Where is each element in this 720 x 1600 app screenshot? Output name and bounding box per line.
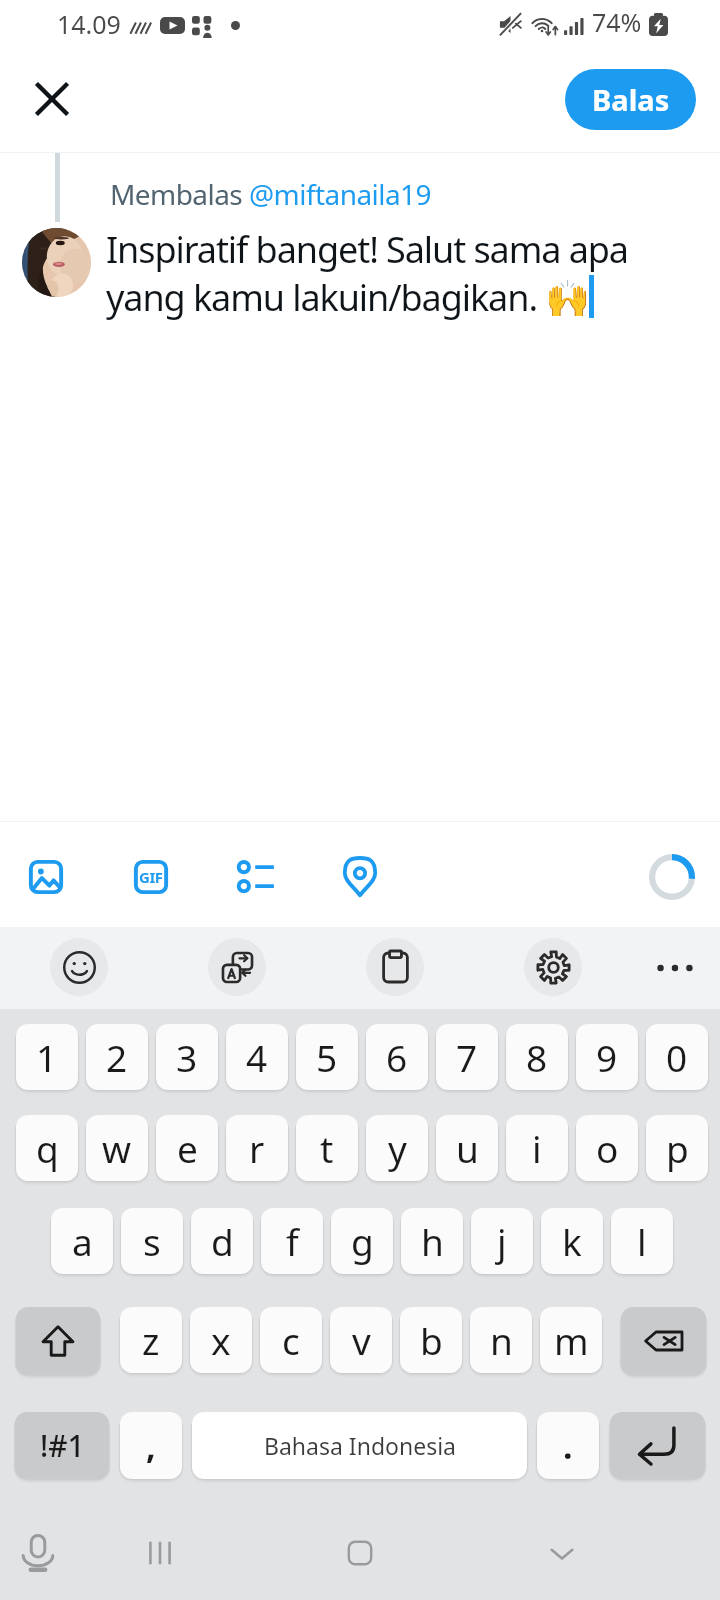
button[interactable]: y xyxy=(366,1115,428,1181)
staticText: @miftanaila19 xyxy=(249,175,431,213)
staticText: g xyxy=(351,1216,374,1266)
button[interactable]: z xyxy=(120,1307,182,1373)
button[interactable]: !#1 xyxy=(15,1412,109,1479)
staticText: !#1 xyxy=(40,1425,85,1466)
button[interactable]: Recents xyxy=(134,1527,186,1579)
staticText: x xyxy=(211,1315,231,1365)
staticText: 0 xyxy=(666,1032,688,1082)
staticText: m xyxy=(554,1315,589,1365)
button[interactable]: p xyxy=(646,1115,708,1181)
staticText: b xyxy=(420,1315,443,1365)
staticText: i xyxy=(532,1123,542,1173)
button[interactable]: d xyxy=(191,1208,253,1274)
button[interactable]: 5 xyxy=(296,1024,358,1090)
staticText: GIF xyxy=(139,867,163,887)
staticText: z xyxy=(142,1315,160,1365)
button[interactable]: Voice input xyxy=(12,1527,64,1579)
button[interactable]: m xyxy=(540,1307,602,1373)
staticText: 8 xyxy=(526,1032,548,1082)
staticText: c xyxy=(282,1315,300,1365)
button[interactable]: Backspace xyxy=(621,1307,706,1375)
button[interactable]: g xyxy=(331,1208,393,1274)
staticText: s xyxy=(143,1216,161,1266)
button[interactable]: More options xyxy=(650,943,700,993)
button[interactable]: c xyxy=(260,1307,322,1373)
button[interactable]: 0 xyxy=(646,1024,708,1090)
staticText: d xyxy=(211,1216,234,1266)
button[interactable]: 2 xyxy=(86,1024,148,1090)
staticText: 7 xyxy=(456,1032,478,1082)
button[interactable]: 8 xyxy=(506,1024,568,1090)
button[interactable]: Character count xyxy=(645,850,699,904)
button[interactable]: r xyxy=(226,1115,288,1181)
button[interactable]: Add poll xyxy=(230,851,282,903)
button[interactable]: f xyxy=(261,1208,323,1274)
staticText: a xyxy=(72,1216,93,1266)
button[interactable]: 1 xyxy=(16,1024,78,1090)
staticText: h xyxy=(421,1216,444,1266)
staticText: 2 xyxy=(106,1032,128,1082)
button[interactable]: 6 xyxy=(366,1024,428,1090)
button[interactable]: . xyxy=(537,1412,599,1479)
button[interactable]: Emoji xyxy=(50,938,108,996)
staticText: f xyxy=(286,1216,299,1266)
staticText: y xyxy=(388,1123,407,1173)
staticText: 3 xyxy=(176,1032,198,1082)
staticText: Balas xyxy=(592,80,670,119)
button[interactable]: w xyxy=(86,1115,148,1181)
button[interactable]: Add GIF xyxy=(125,851,177,903)
button[interactable]: k xyxy=(541,1208,603,1274)
button[interactable]: , xyxy=(120,1412,182,1479)
button[interactable]: Balas xyxy=(565,69,696,130)
button[interactable]: o xyxy=(576,1115,638,1181)
button[interactable]: Keyboard settings xyxy=(524,938,582,996)
button[interactable]: Add location xyxy=(334,851,386,903)
button[interactable]: Add photo xyxy=(20,851,72,903)
button[interactable]: Hide keyboard xyxy=(536,1527,588,1579)
button[interactable]: l xyxy=(611,1208,673,1274)
staticText: , xyxy=(146,1423,156,1469)
button[interactable]: i xyxy=(506,1115,568,1181)
button[interactable]: a xyxy=(51,1208,113,1274)
button[interactable]: e xyxy=(156,1115,218,1181)
button[interactable]: 3 xyxy=(156,1024,218,1090)
staticText: Bahasa Indonesia xyxy=(264,1430,456,1461)
button[interactable]: Close xyxy=(21,68,83,130)
button[interactable]: s xyxy=(121,1208,183,1274)
button[interactable]: 9 xyxy=(576,1024,638,1090)
button[interactable]: x xyxy=(190,1307,252,1373)
button[interactable]: h xyxy=(401,1208,463,1274)
staticText: 4 xyxy=(246,1032,268,1082)
button[interactable]: 4 xyxy=(226,1024,288,1090)
staticText: l xyxy=(637,1216,647,1266)
staticText: 9 xyxy=(596,1032,618,1082)
button[interactable]: Enter xyxy=(610,1412,705,1479)
staticText: 74% xyxy=(592,5,642,39)
button[interactable]: 7 xyxy=(436,1024,498,1090)
button[interactable]: t xyxy=(296,1115,358,1181)
button[interactable]: Clipboard xyxy=(366,938,424,996)
button[interactable]: b xyxy=(400,1307,462,1373)
button[interactable]: Bahasa Indonesia xyxy=(192,1412,527,1479)
staticText: v xyxy=(352,1315,371,1365)
button[interactable]: n xyxy=(470,1307,532,1373)
staticText: o xyxy=(596,1123,619,1173)
staticText: . xyxy=(563,1423,573,1469)
button[interactable]: Shift xyxy=(16,1307,100,1375)
button[interactable]: u xyxy=(436,1115,498,1181)
staticText: e xyxy=(177,1123,198,1173)
staticText: 5 xyxy=(316,1032,338,1082)
button[interactable]: v xyxy=(330,1307,392,1373)
staticText: t xyxy=(320,1123,334,1173)
staticText: w xyxy=(102,1123,132,1173)
staticText: p xyxy=(666,1123,689,1173)
button[interactable]: Translate xyxy=(208,938,266,996)
button[interactable]: j xyxy=(471,1208,533,1274)
button[interactable]: Home xyxy=(334,1527,386,1579)
staticText: Inspiratif banget! Salut sama apa yang k… xyxy=(106,225,628,322)
staticText: q xyxy=(36,1123,59,1173)
button[interactable]: q xyxy=(16,1115,78,1181)
staticText: 1 xyxy=(36,1032,58,1082)
staticText: k xyxy=(562,1216,582,1266)
staticText: n xyxy=(490,1315,513,1365)
